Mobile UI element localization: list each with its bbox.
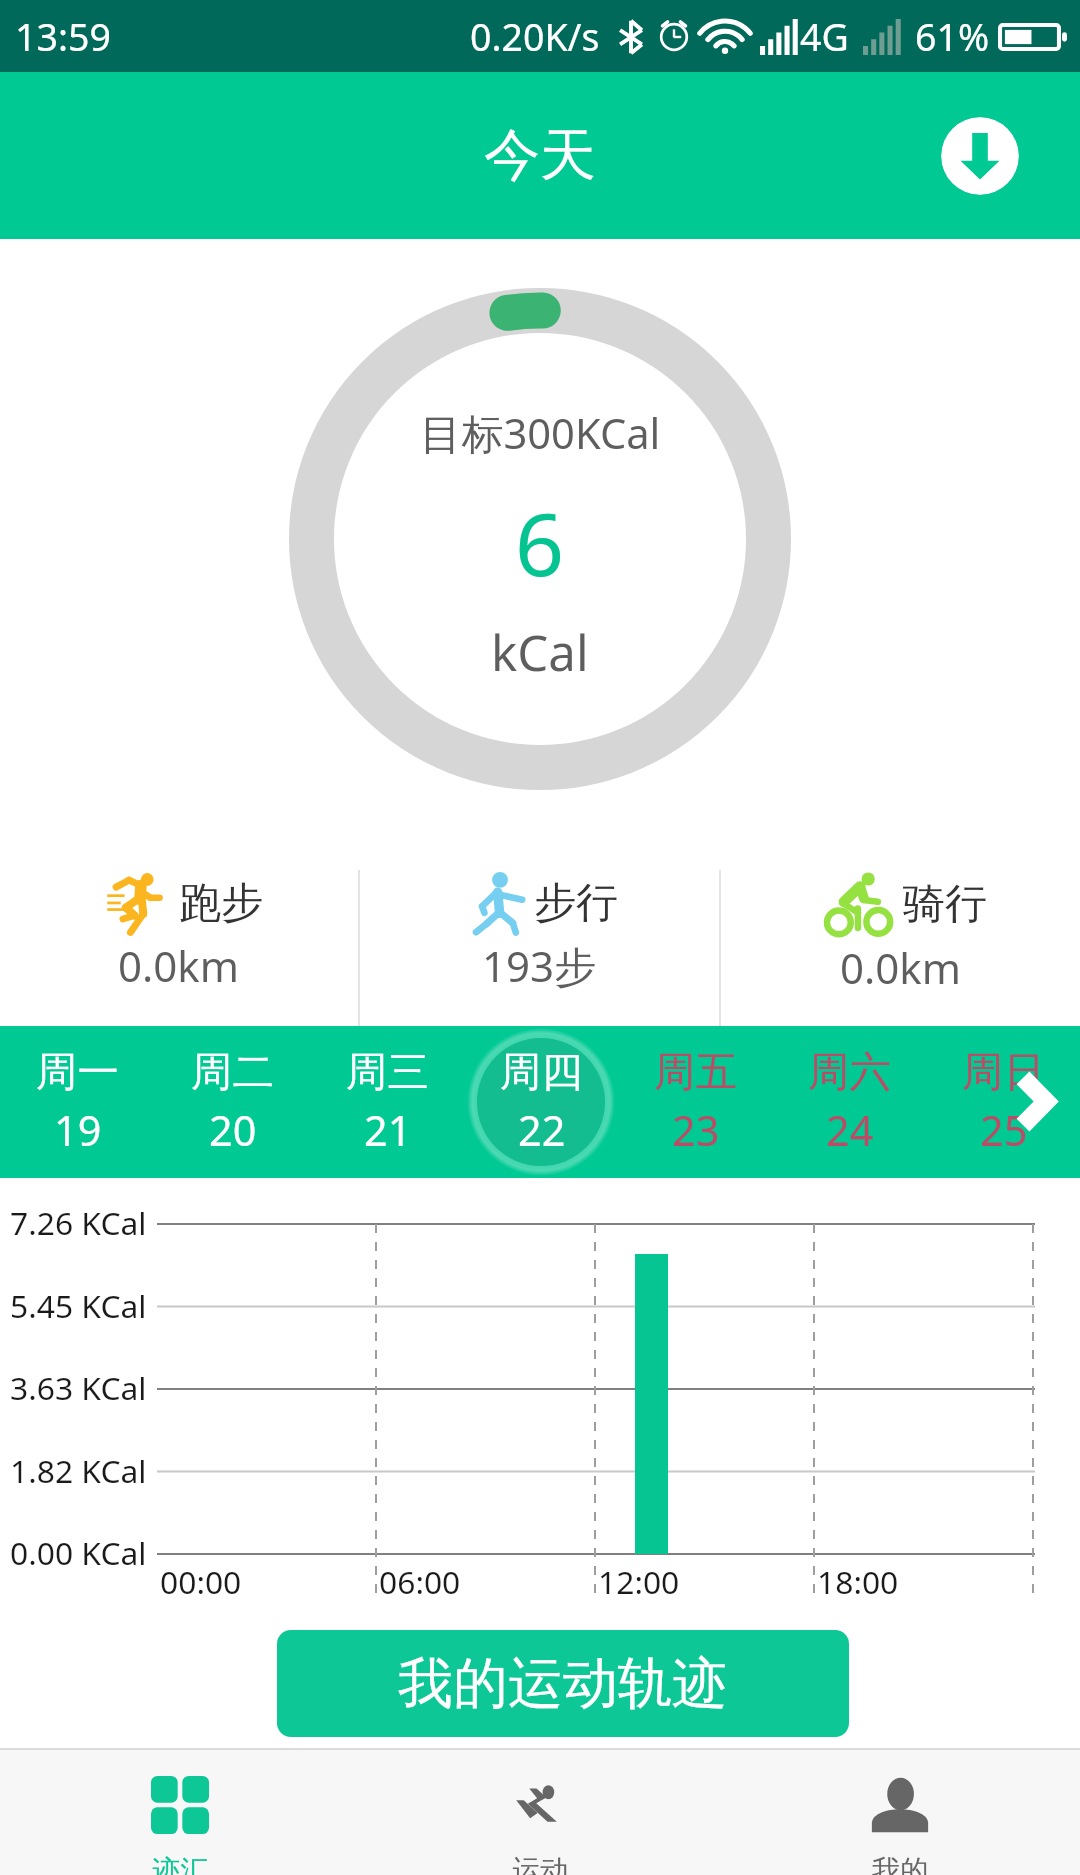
staticText: 12:00 (598, 1560, 680, 1603)
staticText: 周一 (36, 1046, 119, 1098)
staticText: 周六 (808, 1046, 891, 1098)
staticText: 我的运动轨迹 (398, 1649, 728, 1718)
button[interactable]: 周三 (310, 1026, 464, 1178)
staticText: 6 (515, 484, 565, 601)
button[interactable]: 我的 (720, 1750, 1080, 1875)
staticText: 0.00 KCal (10, 1531, 147, 1574)
staticText: 0.0km (118, 937, 240, 994)
staticText: 跑步 (179, 877, 263, 930)
staticText: 0.0km (840, 939, 962, 996)
staticText: 周四 (500, 1046, 583, 1098)
button[interactable]: 周四 (464, 1026, 618, 1178)
button[interactable]: 运动 (360, 1750, 720, 1875)
button[interactable]: 周日 (926, 1026, 1080, 1178)
staticText: 5.45 KCal (10, 1284, 147, 1327)
staticText: 0.20K/s (470, 11, 600, 62)
button[interactable]: 周一 (0, 1026, 155, 1178)
staticText: 3.63 KCal (10, 1366, 147, 1409)
staticText: 周三 (346, 1046, 429, 1098)
staticText: 周二 (191, 1046, 274, 1098)
staticText: 迹汇 (152, 1853, 209, 1875)
staticText: 7.26 KCal (10, 1201, 147, 1244)
button[interactable]: Next week (1014, 1068, 1057, 1135)
staticText: 20 (209, 1102, 257, 1158)
staticText: 22 (518, 1102, 566, 1158)
staticText: 骑行 (903, 878, 987, 931)
staticText: 23 (672, 1102, 720, 1158)
staticText: 18:00 (817, 1560, 899, 1603)
button[interactable]: Download (941, 117, 1019, 195)
staticText: 24 (826, 1102, 874, 1158)
staticText: 13:59 (15, 11, 111, 62)
staticText: 我的 (872, 1853, 929, 1875)
staticText: 今天 (484, 120, 597, 191)
staticText: 周日 (962, 1046, 1045, 1098)
staticText: 周五 (654, 1046, 737, 1098)
staticText: 1.82 KCal (10, 1449, 147, 1492)
staticText: 21 (364, 1102, 412, 1158)
staticText: 19 (54, 1102, 102, 1158)
button[interactable]: 周二 (155, 1026, 310, 1178)
staticText: 61% (915, 11, 990, 62)
staticText: 步行 (534, 877, 618, 930)
button[interactable]: 跑步 (0, 870, 358, 1026)
button[interactable]: 骑行 (721, 870, 1080, 1026)
button[interactable]: 步行 (360, 870, 719, 1026)
button[interactable]: 迹汇 (0, 1750, 360, 1875)
staticText: 06:00 (379, 1560, 461, 1603)
staticText: 00:00 (160, 1560, 242, 1603)
button[interactable]: 周六 (772, 1026, 926, 1178)
staticText: 193步 (482, 937, 597, 994)
staticText: kCal (491, 618, 589, 685)
staticText: 25 (980, 1102, 1028, 1158)
button[interactable]: 我的运动轨迹 (277, 1630, 849, 1737)
staticText: 运动 (512, 1853, 569, 1875)
button[interactable]: 周五 (618, 1026, 772, 1178)
staticText: 4G (800, 11, 849, 62)
staticText: 目标300KCal (420, 404, 661, 461)
